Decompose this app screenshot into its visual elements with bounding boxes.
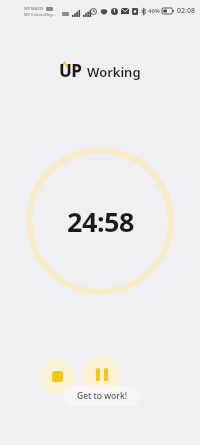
staticText: 02:08 (177, 6, 195, 16)
button[interactable]: Stop (40, 359, 75, 394)
staticText: Get to work! (77, 390, 127, 402)
button[interactable]: Pause (82, 355, 121, 394)
staticText: MY CelcomDigi… (24, 12, 56, 17)
staticText: MY MAXIS (24, 6, 44, 11)
staticText: 24:58 (67, 203, 134, 240)
staticText: Working (87, 63, 141, 81)
staticText: UP (59, 59, 82, 82)
staticText: 46% (148, 7, 160, 15)
button[interactable]: Get to work! (63, 386, 140, 406)
